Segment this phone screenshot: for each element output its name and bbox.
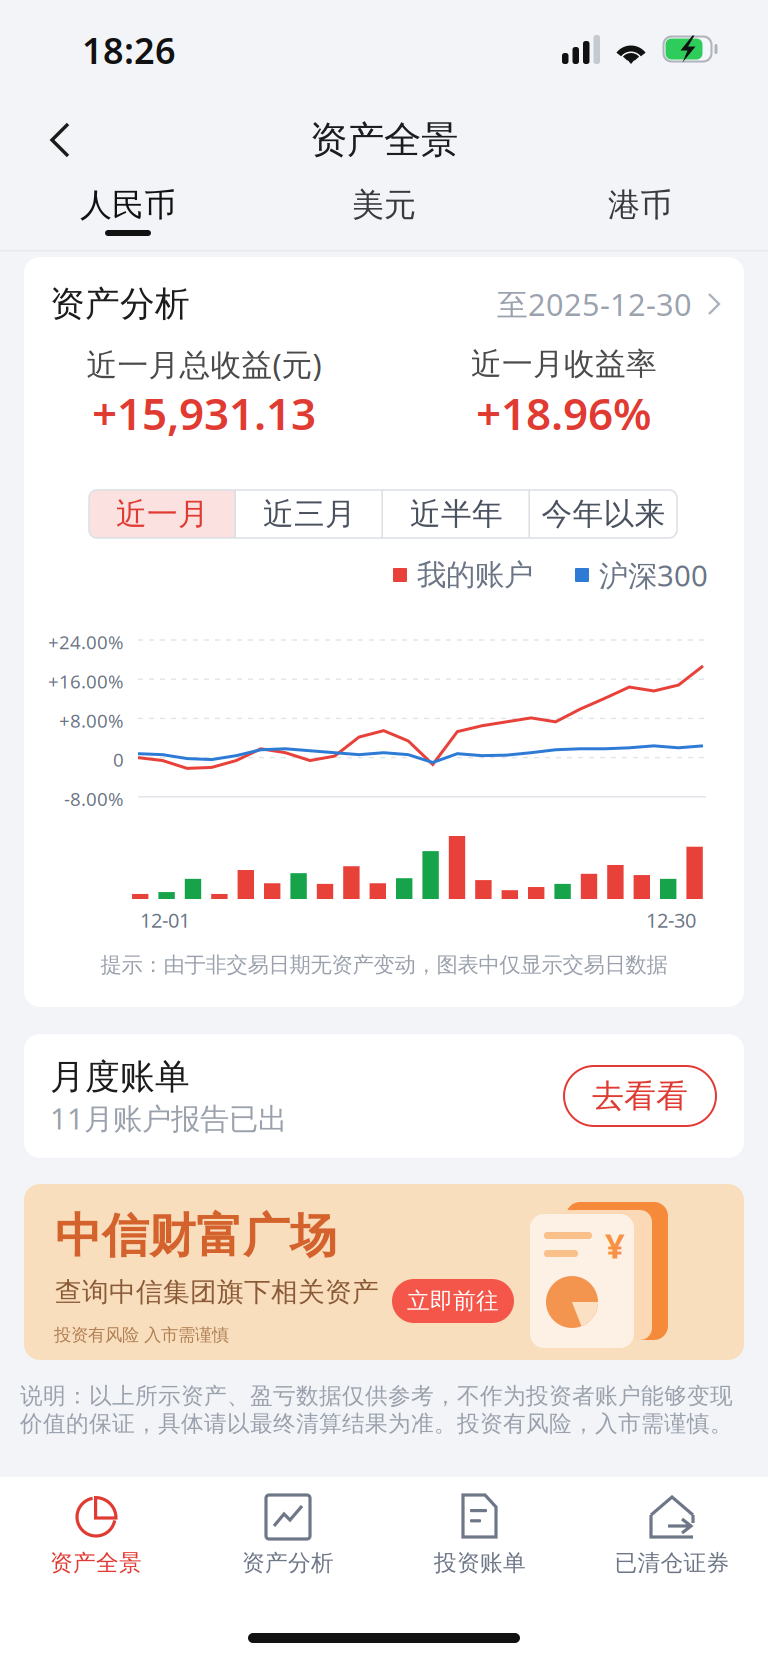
button[interactable]: 今年以来 xyxy=(530,490,677,538)
staticText: 投资有风险 入市需谨慎 xyxy=(54,1324,229,1346)
staticText: 近三月 xyxy=(263,495,356,533)
staticText: 12-01 xyxy=(140,907,190,933)
staticText: 0 xyxy=(113,747,124,772)
staticText: 18:26 xyxy=(82,26,176,74)
staticText: 我的账户 xyxy=(417,557,533,593)
staticText: 提示：由于非交易日期无资产变动，图表中仅显示交易日数据 xyxy=(100,952,667,978)
button[interactable]: 去看看 xyxy=(564,1066,716,1126)
button[interactable]: 人民币 xyxy=(0,184,256,250)
staticText: 近一月 xyxy=(116,495,209,533)
button[interactable]: 已清仓证券 xyxy=(576,1477,768,1609)
staticText: +16.00% xyxy=(48,669,124,694)
staticText: 人民币 xyxy=(80,185,176,225)
staticText: 资产分析 xyxy=(242,1549,334,1577)
button[interactable]: 返回 xyxy=(26,101,94,179)
button[interactable]: 资产分析 xyxy=(192,1477,384,1609)
button[interactable]: 美元 xyxy=(256,184,512,250)
staticText: -8.00% xyxy=(64,786,124,811)
staticText: 立即前往 xyxy=(407,1287,499,1315)
button[interactable]: 港币 xyxy=(512,184,768,250)
button[interactable]: 近半年 xyxy=(383,490,530,538)
staticText: 近半年 xyxy=(410,495,503,533)
staticText: 12-30 xyxy=(646,907,696,933)
staticText: 资产全景 xyxy=(310,117,458,163)
staticText: ¥ xyxy=(605,1222,625,1268)
button[interactable]: 资产全景 xyxy=(0,1477,192,1609)
staticText: 美元 xyxy=(352,185,416,225)
button[interactable]: 资产分析 xyxy=(24,273,744,335)
staticText: 查询中信集团旗下相关资产 xyxy=(55,1276,379,1308)
staticText: +18.96% xyxy=(476,384,652,442)
staticText: 沪深300 xyxy=(599,555,708,594)
button[interactable]: 投资账单 xyxy=(384,1477,576,1609)
staticText: 说明：以上所示资产、盈亏数据仅供参考，不作为投资者账户能够变现价值的保证，具体请… xyxy=(20,1382,733,1438)
staticText: 去看看 xyxy=(592,1076,688,1116)
button[interactable]: ¥ xyxy=(24,1184,744,1360)
staticText: 月度账单 xyxy=(50,1056,190,1098)
staticText: 今年以来 xyxy=(541,495,665,533)
staticText: +24.00% xyxy=(48,630,124,654)
staticText: 资产全景 xyxy=(50,1549,142,1577)
button[interactable]: 近一月 xyxy=(89,490,236,538)
staticText: 近一月收益率 xyxy=(471,345,657,383)
staticText: 近一月总收益(元) xyxy=(86,344,321,384)
staticText: 已清仓证券 xyxy=(614,1549,729,1577)
staticText: 中信财富广场 xyxy=(55,1207,337,1265)
staticText: 至2025-12-30 xyxy=(497,284,692,324)
staticText: 11月账户报告已出 xyxy=(50,1098,287,1137)
staticText: 投资账单 xyxy=(434,1549,526,1577)
staticText: +8.00% xyxy=(59,708,124,733)
staticText: +15,931.13 xyxy=(92,384,316,442)
staticText: 港币 xyxy=(608,185,672,225)
button[interactable]: 近三月 xyxy=(236,490,383,538)
staticText: 资产分析 xyxy=(50,283,190,325)
